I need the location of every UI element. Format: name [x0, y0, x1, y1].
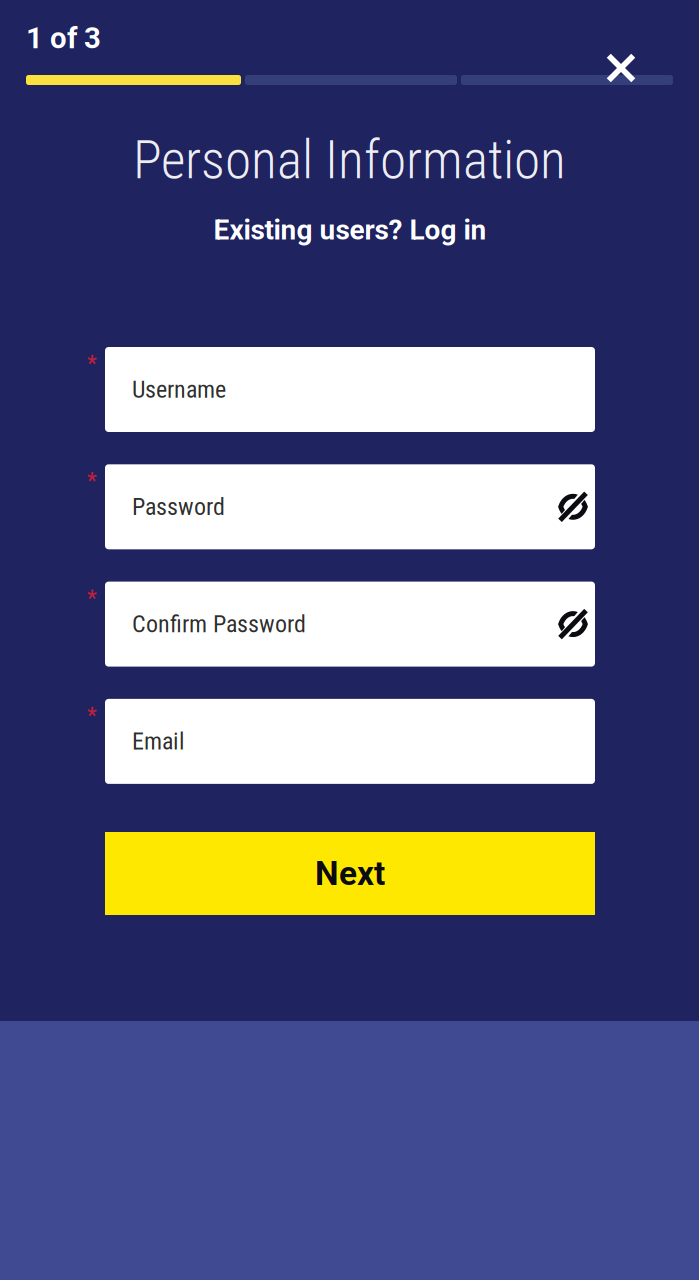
- button[interactable]: Confirm Password: [105, 582, 595, 667]
- button[interactable]: Next: [105, 832, 595, 915]
- button[interactable]: Existing users? Log in: [140, 212, 560, 248]
- button[interactable]: Show password: [551, 464, 595, 549]
- staticText: Email: [132, 727, 185, 755]
- staticText: *: [87, 351, 97, 376]
- staticText: Next: [315, 854, 385, 893]
- staticText: Personal Information: [133, 129, 566, 191]
- staticText: *: [87, 586, 97, 611]
- button[interactable]: Username: [105, 347, 595, 432]
- button[interactable]: Close: [594, 41, 648, 95]
- button[interactable]: Password: [105, 464, 595, 549]
- staticText: *: [87, 468, 97, 493]
- button[interactable]: Email: [105, 699, 595, 784]
- staticText: Confirm Password: [132, 610, 306, 638]
- staticText: Username: [132, 375, 226, 403]
- staticText: Existing users? Log in: [213, 214, 486, 246]
- staticText: 1 of 3: [26, 21, 101, 55]
- button[interactable]: Show password: [551, 582, 595, 667]
- staticText: Password: [132, 493, 225, 521]
- staticText: *: [87, 703, 97, 728]
